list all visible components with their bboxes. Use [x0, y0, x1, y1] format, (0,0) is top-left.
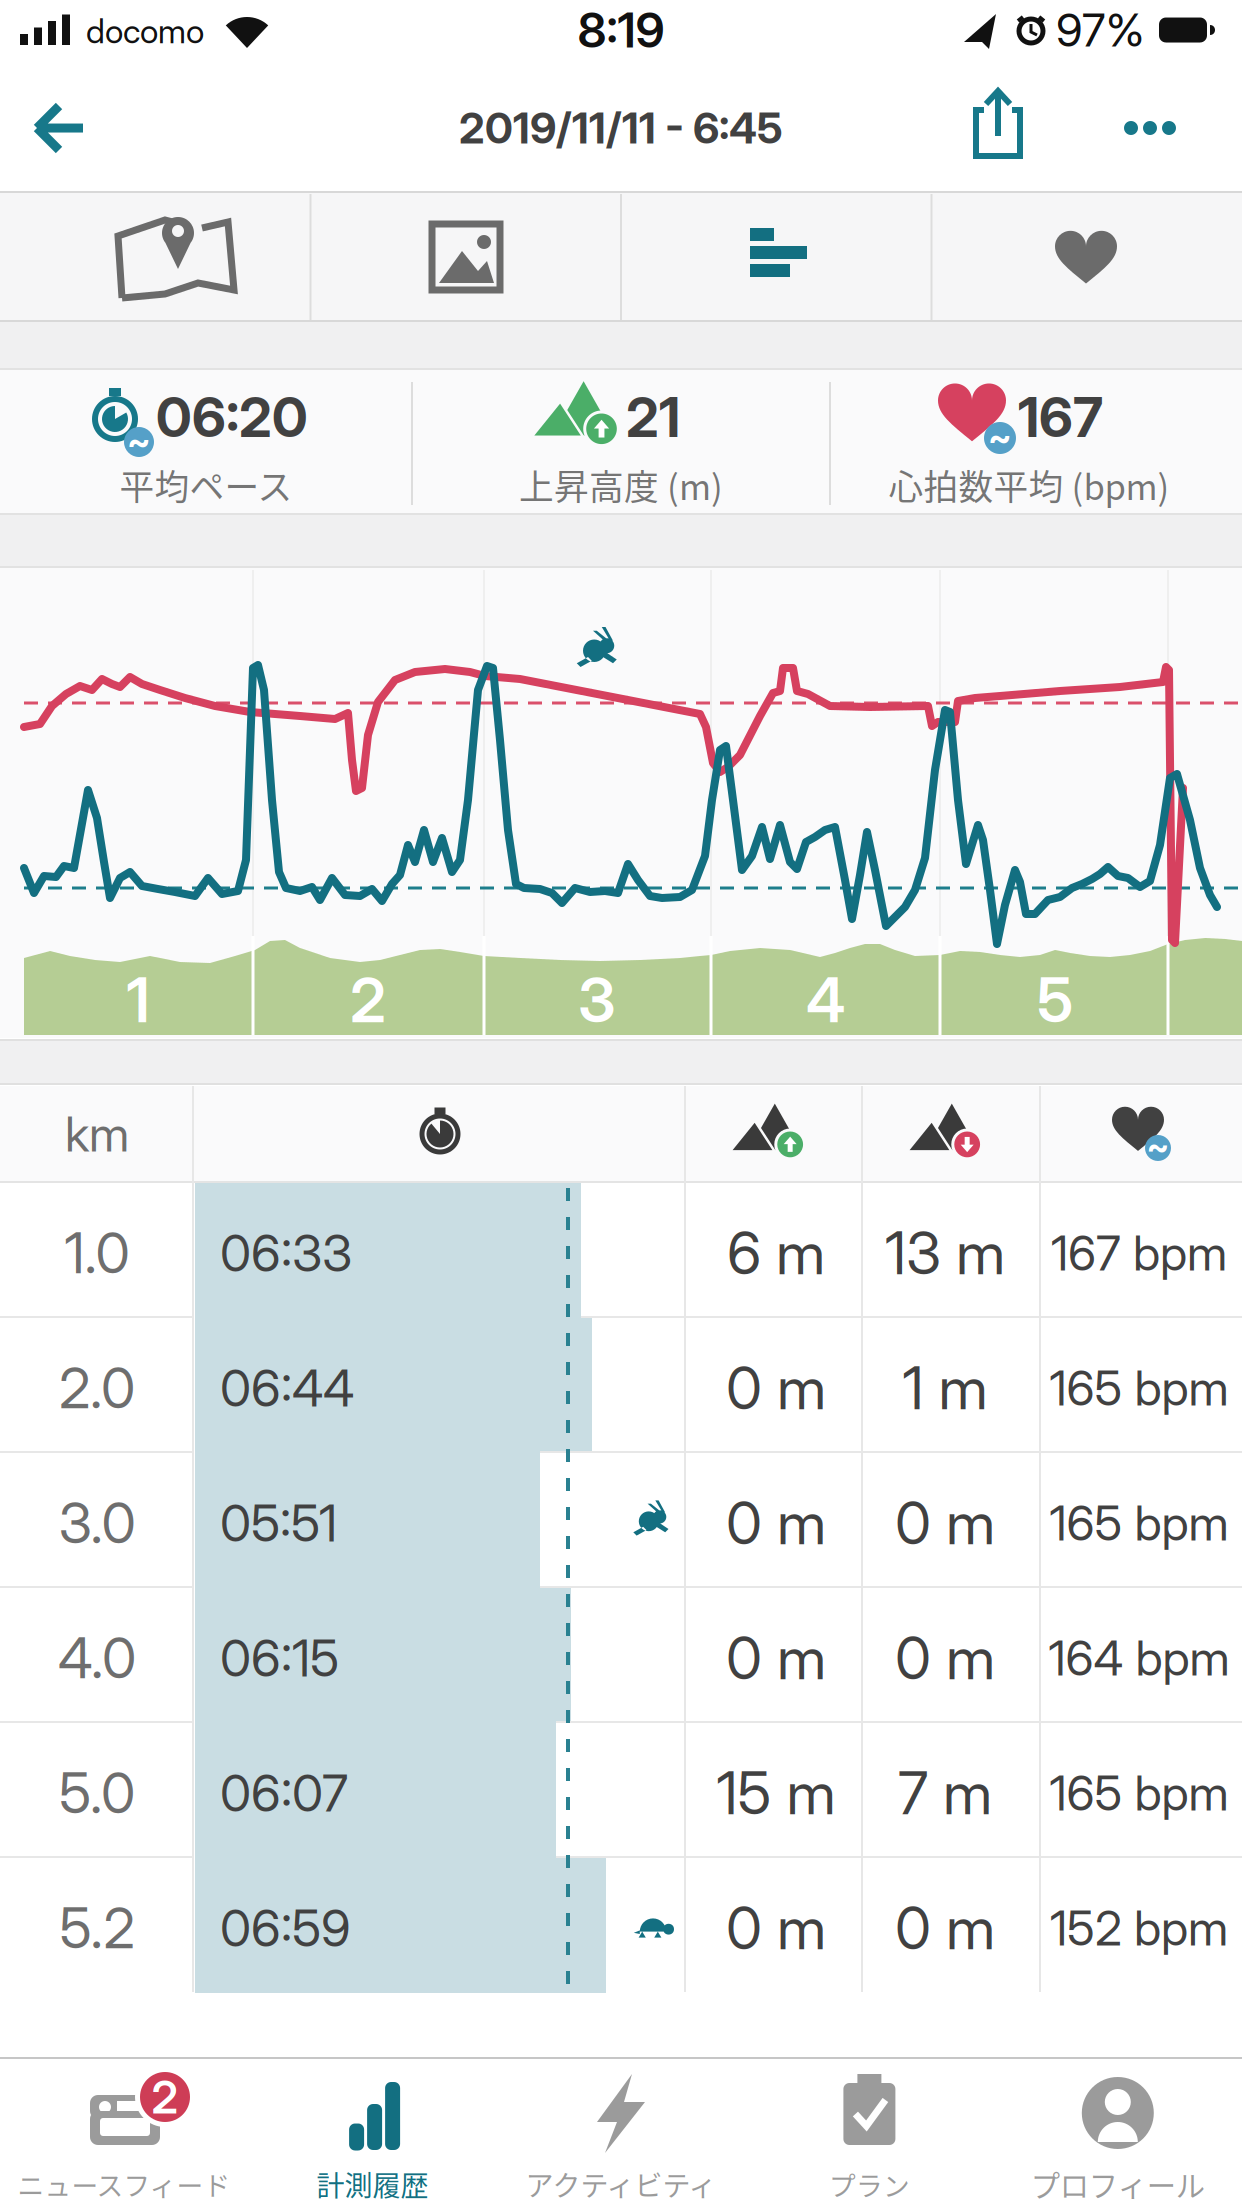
staticText: 5.2 — [59, 1895, 134, 1961]
button[interactable]: Share — [953, 78, 1043, 174]
staticText: docomo — [86, 11, 204, 51]
staticText: 06:15 — [220, 1628, 339, 1688]
button[interactable]: More — [1100, 83, 1200, 173]
button[interactable]: Heart rate — [933, 195, 1239, 319]
staticText: 0 m — [895, 1623, 995, 1693]
staticText: 0 m — [726, 1623, 826, 1693]
staticText: 165 bpm — [1049, 1765, 1228, 1821]
staticText: 計測履歴 — [317, 2164, 429, 2204]
staticText: 06:33 — [220, 1223, 352, 1283]
staticText: 6 m — [727, 1218, 825, 1288]
staticText: ~ — [127, 420, 151, 462]
staticText: 1 m — [902, 1353, 987, 1423]
staticText: 05:51 — [220, 1493, 337, 1553]
staticText: 13 m — [885, 1218, 1005, 1288]
button[interactable]: Photos — [312, 195, 618, 319]
staticText: 165 bpm — [1049, 1360, 1228, 1416]
staticText: 3 — [578, 964, 616, 1036]
staticText: 06:44 — [220, 1358, 354, 1418]
button[interactable]: Back — [23, 83, 113, 173]
staticText: プロフィール — [1031, 2163, 1205, 2205]
staticText: 3.0 — [58, 1490, 135, 1556]
staticText: 4.0 — [58, 1625, 136, 1691]
staticText: 0 m — [726, 1488, 826, 1558]
staticText: 97% — [1056, 3, 1144, 57]
staticText: 15 m — [716, 1758, 835, 1828]
staticText: 21 — [626, 385, 680, 449]
staticText: 心拍数平均 (bpm) — [888, 460, 1169, 510]
staticText: km — [65, 1106, 129, 1162]
staticText: ~ — [988, 416, 1012, 458]
staticText: 2.0 — [59, 1355, 135, 1421]
button[interactable]: 2 — [0, 2058, 248, 2206]
button[interactable]: プロフィール — [994, 2058, 1242, 2206]
staticText: 2 — [151, 2070, 178, 2124]
staticText: 164 bpm — [1048, 1630, 1229, 1686]
staticText: ~ — [1146, 1126, 1169, 1166]
staticText: 平均ペース — [119, 460, 292, 510]
staticText: プラン — [829, 2165, 910, 2203]
button[interactable]: アクティビティ — [497, 2058, 745, 2206]
staticText: 8:19 — [577, 2, 664, 58]
staticText: 152 bpm — [1050, 1900, 1228, 1956]
staticText: 0 m — [895, 1488, 995, 1558]
staticText: 165 bpm — [1049, 1495, 1228, 1551]
button[interactable]: Map — [2, 195, 308, 319]
staticText: 5 — [1037, 964, 1073, 1036]
staticText: 7 m — [898, 1758, 992, 1828]
staticText: 4 — [806, 964, 846, 1036]
staticText: アクティビティ — [525, 2164, 716, 2204]
button[interactable]: 計測履歴 — [249, 2058, 497, 2206]
staticText: 1.0 — [64, 1220, 129, 1286]
button[interactable]: プラン — [745, 2058, 993, 2206]
staticText: 2 — [350, 964, 386, 1036]
staticText: 167 bpm — [1051, 1225, 1227, 1281]
staticText: 2019/11/11 - 6:45 — [459, 103, 783, 153]
staticText: ニュースフィード — [17, 2165, 230, 2203]
staticText: 06:59 — [220, 1898, 351, 1958]
staticText: 06:07 — [220, 1763, 348, 1823]
staticText: 1 — [126, 964, 149, 1036]
staticText: 5.0 — [59, 1760, 135, 1826]
staticText: 0 m — [726, 1893, 826, 1963]
button[interactable]: Splits — [623, 195, 929, 319]
staticText: 上昇高度 (m) — [519, 460, 723, 510]
staticText: 0 m — [895, 1893, 995, 1963]
staticText: 167 — [1018, 385, 1103, 449]
staticText: 0 m — [726, 1353, 826, 1423]
staticText: 06:20 — [156, 385, 308, 449]
